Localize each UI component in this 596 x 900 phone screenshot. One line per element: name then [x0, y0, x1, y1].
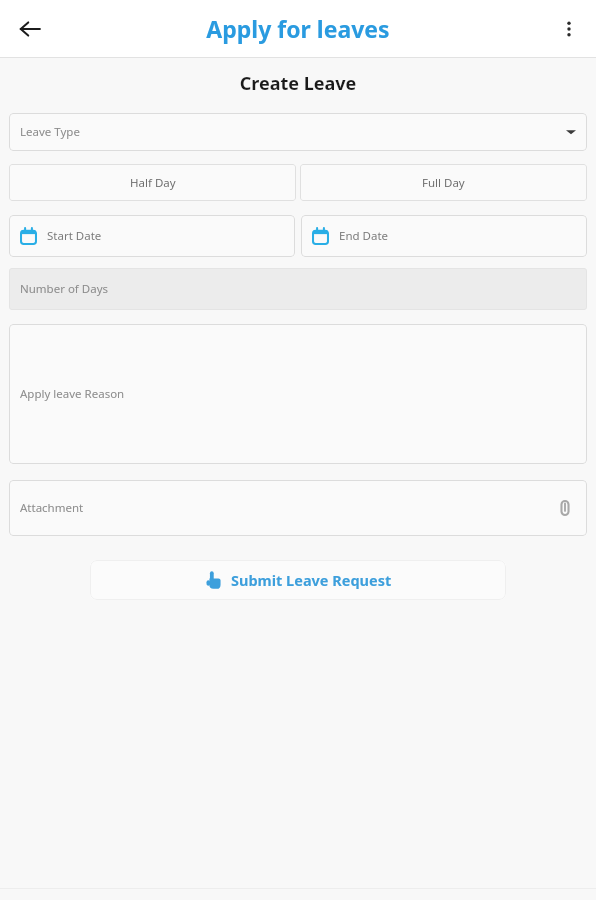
staticText: Apply leave Reason — [20, 386, 125, 402]
staticText: Full Day — [422, 175, 465, 191]
staticText: Half Day — [130, 175, 176, 191]
button[interactable]: Apply leave Reason — [9, 324, 587, 464]
button[interactable]: End Date — [301, 215, 587, 257]
button[interactable]: Full Day — [300, 164, 587, 201]
button[interactable]: Submit Leave Request — [90, 560, 506, 600]
button[interactable]: Back — [8, 7, 52, 51]
staticText: Leave Type — [20, 124, 80, 140]
staticText: Attachment — [20, 500, 84, 516]
button[interactable]: Number of Days — [9, 268, 587, 310]
button[interactable]: Leave Type — [9, 113, 587, 151]
staticText: Apply for leaves — [206, 13, 390, 44]
button[interactable]: More options — [548, 8, 590, 50]
staticText: End Date — [339, 228, 389, 244]
button[interactable]: Half Day — [9, 164, 296, 201]
staticText: Start Date — [47, 228, 102, 244]
staticText: Submit Leave Request — [231, 570, 392, 590]
button[interactable]: Start Date — [9, 215, 295, 257]
staticText: Number of Days — [20, 281, 109, 297]
staticText: Create Leave — [0, 71, 596, 96]
other: Attach file — [554, 497, 576, 519]
button[interactable]: Attachment — [9, 480, 587, 536]
